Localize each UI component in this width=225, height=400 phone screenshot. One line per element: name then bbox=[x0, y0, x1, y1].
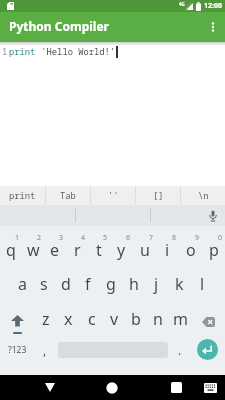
staticText: z bbox=[42, 308, 50, 330]
button[interactable]: k bbox=[168, 268, 191, 300]
button[interactable]: print bbox=[0, 186, 45, 205]
button[interactable]: f bbox=[77, 268, 99, 300]
staticText: ?123 bbox=[8, 344, 27, 356]
button[interactable] bbox=[164, 375, 188, 400]
button[interactable] bbox=[100, 375, 124, 400]
staticText: w bbox=[27, 239, 40, 261]
button[interactable]: i bbox=[156, 232, 179, 266]
staticText: c bbox=[88, 308, 96, 330]
button[interactable]: c bbox=[80, 302, 103, 336]
button[interactable]: l bbox=[191, 268, 214, 300]
button[interactable]: '' bbox=[91, 186, 135, 205]
staticText: \n bbox=[198, 190, 209, 202]
staticText: 4 bbox=[81, 233, 86, 243]
button[interactable]: [] bbox=[136, 186, 180, 205]
button[interactable]: . bbox=[169, 336, 191, 364]
staticText: x bbox=[64, 308, 73, 330]
button[interactable]: w bbox=[22, 232, 44, 266]
button[interactable]: g bbox=[99, 268, 122, 300]
staticText: h bbox=[129, 273, 139, 295]
staticText: . bbox=[178, 342, 182, 358]
button[interactable]: s bbox=[33, 268, 55, 300]
staticText: 9 bbox=[195, 233, 200, 243]
staticText: 5 bbox=[103, 233, 108, 243]
button[interactable]: d bbox=[55, 268, 77, 300]
staticText: [] bbox=[153, 190, 164, 202]
staticText: n bbox=[153, 308, 163, 330]
staticText: 'Hello World!' bbox=[36, 46, 116, 58]
staticText: Python Compiler bbox=[9, 18, 109, 34]
staticText: g bbox=[106, 273, 116, 295]
button[interactable]: v bbox=[103, 302, 125, 336]
staticText: j bbox=[154, 273, 159, 295]
button[interactable]: j bbox=[145, 268, 168, 300]
button[interactable]: h bbox=[122, 268, 145, 300]
staticText: a bbox=[18, 273, 27, 295]
staticText: y bbox=[117, 239, 126, 261]
button[interactable]: p bbox=[202, 232, 225, 266]
staticText: r bbox=[74, 239, 81, 261]
staticText: 2 bbox=[37, 233, 42, 243]
button[interactable] bbox=[38, 375, 62, 400]
staticText: l bbox=[200, 273, 205, 295]
staticText: q bbox=[6, 239, 16, 261]
button[interactable] bbox=[0, 302, 34, 336]
button[interactable]: o bbox=[179, 232, 202, 266]
button[interactable] bbox=[197, 339, 218, 360]
staticText: p bbox=[209, 239, 219, 261]
button[interactable]: x bbox=[57, 302, 80, 336]
button[interactable]: m bbox=[169, 302, 191, 336]
staticText: b bbox=[131, 308, 141, 330]
button[interactable]: y bbox=[110, 232, 133, 266]
staticText: s bbox=[40, 273, 48, 295]
button[interactable]: n bbox=[147, 302, 169, 336]
staticText: e bbox=[50, 239, 60, 261]
staticText: , bbox=[43, 342, 47, 358]
button[interactable]: Tab bbox=[46, 186, 90, 205]
button[interactable]: b bbox=[125, 302, 147, 336]
staticText: 7 bbox=[149, 233, 154, 243]
button[interactable] bbox=[198, 375, 222, 400]
staticText: print bbox=[9, 190, 36, 202]
staticText: d bbox=[61, 273, 71, 295]
staticText: 8 bbox=[172, 233, 177, 243]
button[interactable] bbox=[201, 15, 225, 39]
staticText: 1 bbox=[15, 233, 20, 243]
button[interactable]: \n bbox=[181, 186, 225, 205]
button[interactable]: q bbox=[0, 232, 22, 266]
staticText: Tab bbox=[60, 190, 76, 202]
button[interactable]: r bbox=[66, 232, 88, 266]
button[interactable]: ?123 bbox=[0, 336, 34, 364]
staticText: '' bbox=[108, 190, 119, 202]
staticText: 0 bbox=[218, 233, 223, 243]
staticText: 12:00 bbox=[204, 1, 222, 11]
staticText: k bbox=[175, 273, 184, 295]
button[interactable]: e bbox=[44, 232, 66, 266]
button[interactable]: z bbox=[34, 302, 57, 336]
staticText: 4G bbox=[179, 1, 185, 7]
staticText: t bbox=[96, 239, 102, 261]
staticText: m bbox=[173, 308, 188, 330]
staticText: o bbox=[186, 239, 196, 261]
staticText: i bbox=[165, 239, 170, 261]
staticText: 1 bbox=[2, 46, 8, 58]
staticText: u bbox=[140, 239, 150, 261]
button[interactable]: , bbox=[34, 336, 56, 364]
button[interactable] bbox=[191, 302, 225, 336]
button[interactable]: a bbox=[11, 268, 33, 300]
staticText: print bbox=[9, 46, 36, 58]
button[interactable]: t bbox=[88, 232, 110, 266]
staticText: v bbox=[110, 308, 119, 330]
staticText: 3 bbox=[59, 233, 64, 243]
staticText: f bbox=[85, 273, 91, 295]
staticText: 6 bbox=[126, 233, 131, 243]
button[interactable]: u bbox=[133, 232, 156, 266]
